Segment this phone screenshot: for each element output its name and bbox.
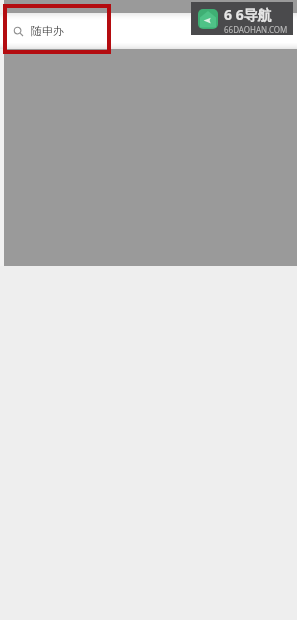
staticText: 6 6导航 (224, 5, 272, 24)
staticText: 随申办 (31, 24, 64, 38)
button[interactable]: Search (14, 13, 297, 49)
other: Search (14, 27, 23, 36)
staticText: 66DAOHAN.COM (224, 24, 288, 35)
